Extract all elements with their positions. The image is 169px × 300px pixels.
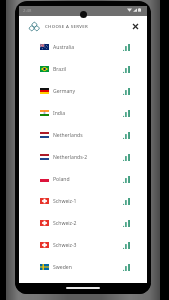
button[interactable]: Close [130,21,140,31]
staticText: Germany [53,88,76,95]
staticText: Netherlands [53,132,83,139]
staticText: Poland [53,176,70,183]
button[interactable]: Netherlands-2 [19,146,147,168]
staticText: Schweiz-3 [53,242,77,249]
button[interactable]: Poland [19,168,147,190]
button[interactable]: Australia [19,36,147,58]
staticText: 2:48 [23,8,32,14]
staticText: India [53,110,66,117]
button[interactable]: India [19,102,147,124]
button[interactable]: Germany [19,80,147,102]
staticText: Schweiz-2 [53,220,77,227]
staticText: Australia [53,44,75,51]
staticText: Sweden [53,264,72,271]
button[interactable]: Schweiz-2 [19,212,147,234]
staticText: CHOOSE A SERVER [45,23,89,29]
button[interactable]: Schweiz-1 [19,190,147,212]
staticText: Schweiz-1 [53,198,77,205]
staticText: Brazil [53,66,67,73]
button[interactable]: Brazil [19,58,147,80]
staticText: Netherlands-2 [53,154,88,161]
button[interactable]: Schweiz-3 [19,234,147,256]
button[interactable]: Sweden [19,256,147,278]
button[interactable]: Netherlands [19,124,147,146]
